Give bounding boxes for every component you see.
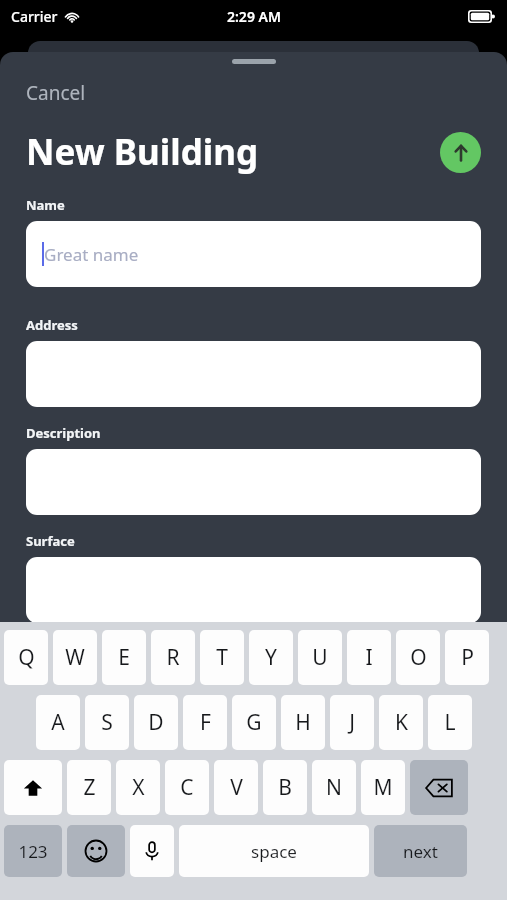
staticText: S — [101, 708, 113, 737]
staticText: P — [461, 643, 474, 672]
staticText: J — [349, 708, 355, 737]
staticText: Surface — [26, 532, 75, 550]
button[interactable]: space — [179, 825, 369, 877]
staticText: O — [410, 643, 427, 672]
staticText: W — [65, 643, 85, 672]
button[interactable]: O — [396, 630, 440, 685]
button[interactable]: V — [214, 760, 258, 815]
staticText: M — [373, 773, 393, 802]
staticText: G — [246, 708, 262, 737]
staticText: Z — [83, 773, 96, 802]
staticText: L — [444, 708, 456, 737]
button[interactable]: Z — [67, 760, 111, 815]
staticText: Cancel — [26, 80, 86, 106]
staticText: U — [312, 643, 328, 672]
button[interactable]: G — [232, 695, 276, 750]
button[interactable]: I — [347, 630, 391, 685]
staticText: 123 — [18, 840, 48, 863]
staticText: Address — [26, 316, 78, 334]
button[interactable]: Great name — [26, 221, 481, 287]
staticText: space — [251, 840, 297, 863]
button[interactable] — [26, 341, 481, 407]
staticText: Description — [26, 424, 101, 442]
staticText: Name — [26, 196, 65, 214]
staticText: New Building — [26, 128, 259, 176]
button[interactable] — [26, 557, 481, 623]
button[interactable]: A — [36, 695, 80, 750]
button[interactable]: P — [445, 630, 489, 685]
button[interactable]: K — [379, 695, 423, 750]
staticText: B — [278, 773, 292, 802]
staticText: 2:29 AM — [227, 7, 281, 26]
staticText: H — [295, 708, 311, 737]
staticText: K — [395, 708, 408, 737]
button[interactable]: Cancel — [20, 76, 92, 110]
button[interactable]: next — [374, 825, 467, 877]
staticText: N — [326, 773, 342, 802]
button[interactable]: Backspace — [410, 760, 468, 815]
staticText: Y — [265, 643, 277, 672]
button[interactable]: Y — [249, 630, 293, 685]
button[interactable]: W — [53, 630, 97, 685]
button[interactable]: Q — [4, 630, 48, 685]
button[interactable]: Submit — [440, 132, 481, 173]
button[interactable] — [26, 449, 481, 515]
staticText: V — [230, 773, 243, 802]
button[interactable]: J — [330, 695, 374, 750]
button[interactable]: N — [312, 760, 356, 815]
button[interactable]: X — [116, 760, 160, 815]
button[interactable]: H — [281, 695, 325, 750]
staticText: Great name — [44, 243, 139, 266]
button[interactable]: Emoji — [67, 825, 125, 877]
staticText: X — [132, 773, 145, 802]
button[interactable]: L — [428, 695, 472, 750]
staticText: Q — [18, 643, 35, 672]
staticText: I — [365, 643, 373, 672]
staticText: C — [180, 773, 194, 802]
button[interactable]: R — [151, 630, 195, 685]
staticText: D — [148, 708, 164, 737]
button[interactable]: Voice input — [130, 825, 174, 877]
button[interactable]: D — [134, 695, 178, 750]
staticText: next — [403, 840, 438, 863]
button[interactable]: C — [165, 760, 209, 815]
button[interactable]: T — [200, 630, 244, 685]
button[interactable]: F — [183, 695, 227, 750]
staticText: T — [216, 643, 228, 672]
button[interactable]: S — [85, 695, 129, 750]
staticText: R — [166, 643, 180, 672]
staticText: Carrier — [11, 7, 58, 26]
button[interactable]: 123 — [4, 825, 62, 877]
button[interactable]: M — [361, 760, 405, 815]
staticText: A — [51, 708, 65, 737]
staticText: F — [200, 708, 211, 737]
button[interactable]: E — [102, 630, 146, 685]
button[interactable]: B — [263, 760, 307, 815]
button[interactable]: Shift — [4, 760, 62, 815]
button[interactable]: U — [298, 630, 342, 685]
staticText: E — [118, 643, 130, 672]
